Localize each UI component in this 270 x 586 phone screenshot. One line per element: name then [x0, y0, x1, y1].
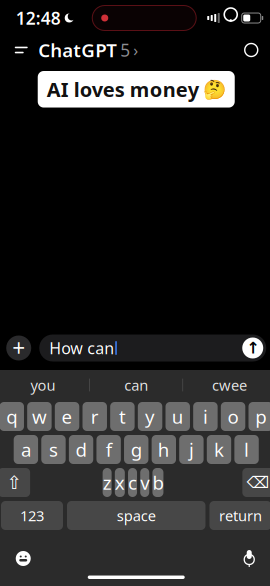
button[interactable]: v: [140, 468, 149, 497]
button[interactable]: j: [179, 435, 204, 464]
staticText: 123: [20, 506, 44, 525]
button[interactable]: y: [138, 402, 162, 431]
staticText: ⇧: [6, 472, 22, 493]
staticText: How can: [49, 337, 114, 359]
button[interactable]: Send: [242, 337, 263, 358]
button[interactable]: New chat: [236, 36, 266, 64]
staticText: space: [117, 506, 156, 525]
staticText: +: [12, 333, 25, 363]
button[interactable]: return: [209, 501, 270, 530]
button[interactable]: b: [152, 468, 163, 497]
staticText: s: [49, 437, 58, 462]
staticText: 🤔: [203, 79, 226, 100]
button[interactable]: Delete: [242, 468, 270, 497]
button[interactable]: r: [82, 402, 107, 431]
staticText: g: [131, 437, 142, 462]
button[interactable]: can: [90, 370, 182, 400]
button[interactable]: Dictation: [232, 543, 266, 573]
staticText: i: [203, 404, 208, 429]
button[interactable]: q: [0, 402, 24, 431]
button[interactable]: t: [110, 402, 135, 431]
staticText: ChatGPT: [38, 38, 117, 62]
staticText: AI loves money: [47, 76, 199, 103]
button[interactable]: u: [165, 402, 190, 431]
staticText: cwee: [212, 375, 247, 395]
button[interactable]: k: [207, 435, 231, 464]
staticText: a: [21, 437, 31, 462]
staticText: q: [6, 404, 17, 429]
staticText: k: [214, 437, 224, 462]
button[interactable]: c: [128, 468, 137, 497]
button[interactable]: Emoji keyboard: [6, 543, 40, 573]
button[interactable]: Add attachment: [6, 335, 31, 360]
staticText: 12:48: [16, 6, 61, 29]
button[interactable]: i: [193, 402, 218, 431]
staticText: l: [244, 437, 249, 462]
button[interactable]: w: [27, 402, 52, 431]
staticText: ›: [133, 39, 138, 61]
staticText: p: [255, 404, 266, 429]
staticText: v: [140, 470, 149, 495]
staticText: y: [145, 404, 155, 429]
staticText: you: [31, 375, 56, 395]
staticText: can: [124, 375, 148, 395]
button[interactable]: f: [96, 435, 121, 464]
staticText: j: [189, 437, 194, 462]
button[interactable]: e: [55, 402, 79, 431]
staticText: w: [32, 404, 47, 429]
staticText: c: [128, 470, 137, 495]
button[interactable]: s: [41, 435, 66, 464]
staticText: return: [219, 506, 262, 525]
button[interactable]: p: [248, 402, 270, 431]
button[interactable]: cwee: [183, 370, 270, 400]
button[interactable]: Shift: [0, 468, 30, 497]
staticText: x: [115, 470, 125, 495]
button[interactable]: l: [234, 435, 259, 464]
button[interactable]: 123: [1, 501, 63, 530]
staticText: ⌫: [247, 473, 270, 492]
staticText: e: [62, 404, 73, 429]
button[interactable]: Menu: [6, 36, 36, 64]
staticText: f: [106, 437, 112, 462]
staticText: d: [76, 437, 87, 462]
staticText: t: [119, 404, 126, 429]
button[interactable]: h: [152, 435, 176, 464]
button[interactable]: ChatGPT: [36, 36, 140, 64]
button[interactable]: x: [115, 468, 125, 497]
button[interactable]: a: [14, 435, 38, 464]
button[interactable]: d: [69, 435, 93, 464]
button[interactable]: g: [124, 435, 148, 464]
staticText: b: [152, 470, 163, 495]
staticText: r: [91, 404, 99, 429]
button[interactable]: space: [67, 501, 205, 530]
staticText: 5: [120, 38, 130, 61]
button[interactable]: o: [221, 402, 245, 431]
button[interactable]: z: [103, 468, 112, 497]
staticText: ↑: [246, 339, 259, 357]
button[interactable]: you: [0, 370, 89, 400]
staticText: h: [158, 437, 170, 462]
staticText: u: [172, 404, 184, 429]
staticText: z: [103, 470, 112, 495]
staticText: o: [228, 404, 239, 429]
